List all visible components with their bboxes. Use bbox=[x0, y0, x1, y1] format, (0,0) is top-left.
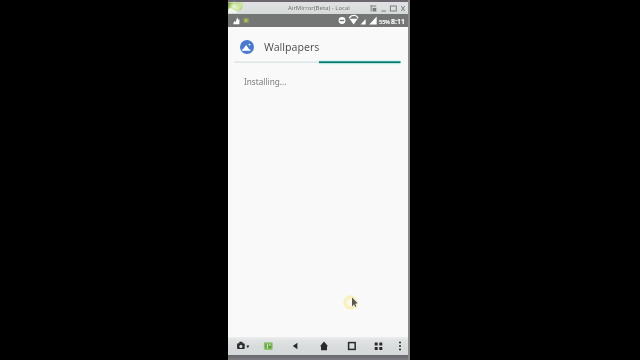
button[interactable]: Back bbox=[284, 337, 306, 355]
button[interactable]: Close bbox=[399, 2, 409, 14]
button[interactable]: Screen record bbox=[258, 337, 280, 355]
staticText: 8:11 bbox=[391, 17, 405, 27]
staticText: AirMirror(Beta) - Local bbox=[288, 4, 350, 12]
button[interactable]: Home bbox=[313, 337, 335, 355]
button[interactable]: More options bbox=[389, 337, 411, 355]
other: App icon bbox=[228, 1, 248, 13]
staticText: 55% bbox=[379, 18, 390, 25]
button[interactable]: Recents bbox=[341, 337, 363, 355]
button[interactable]: Apps bbox=[368, 337, 390, 355]
button[interactable]: Screenshot bbox=[369, 2, 379, 14]
button[interactable]: Minimize bbox=[380, 2, 390, 14]
button[interactable]: Maximize bbox=[389, 2, 399, 14]
button[interactable]: Screenshot bbox=[232, 337, 254, 355]
button[interactable]: Wallpapers app icon bbox=[240, 40, 254, 54]
staticText: Installing... bbox=[244, 76, 287, 87]
staticText: Wallpapers bbox=[264, 40, 320, 54]
